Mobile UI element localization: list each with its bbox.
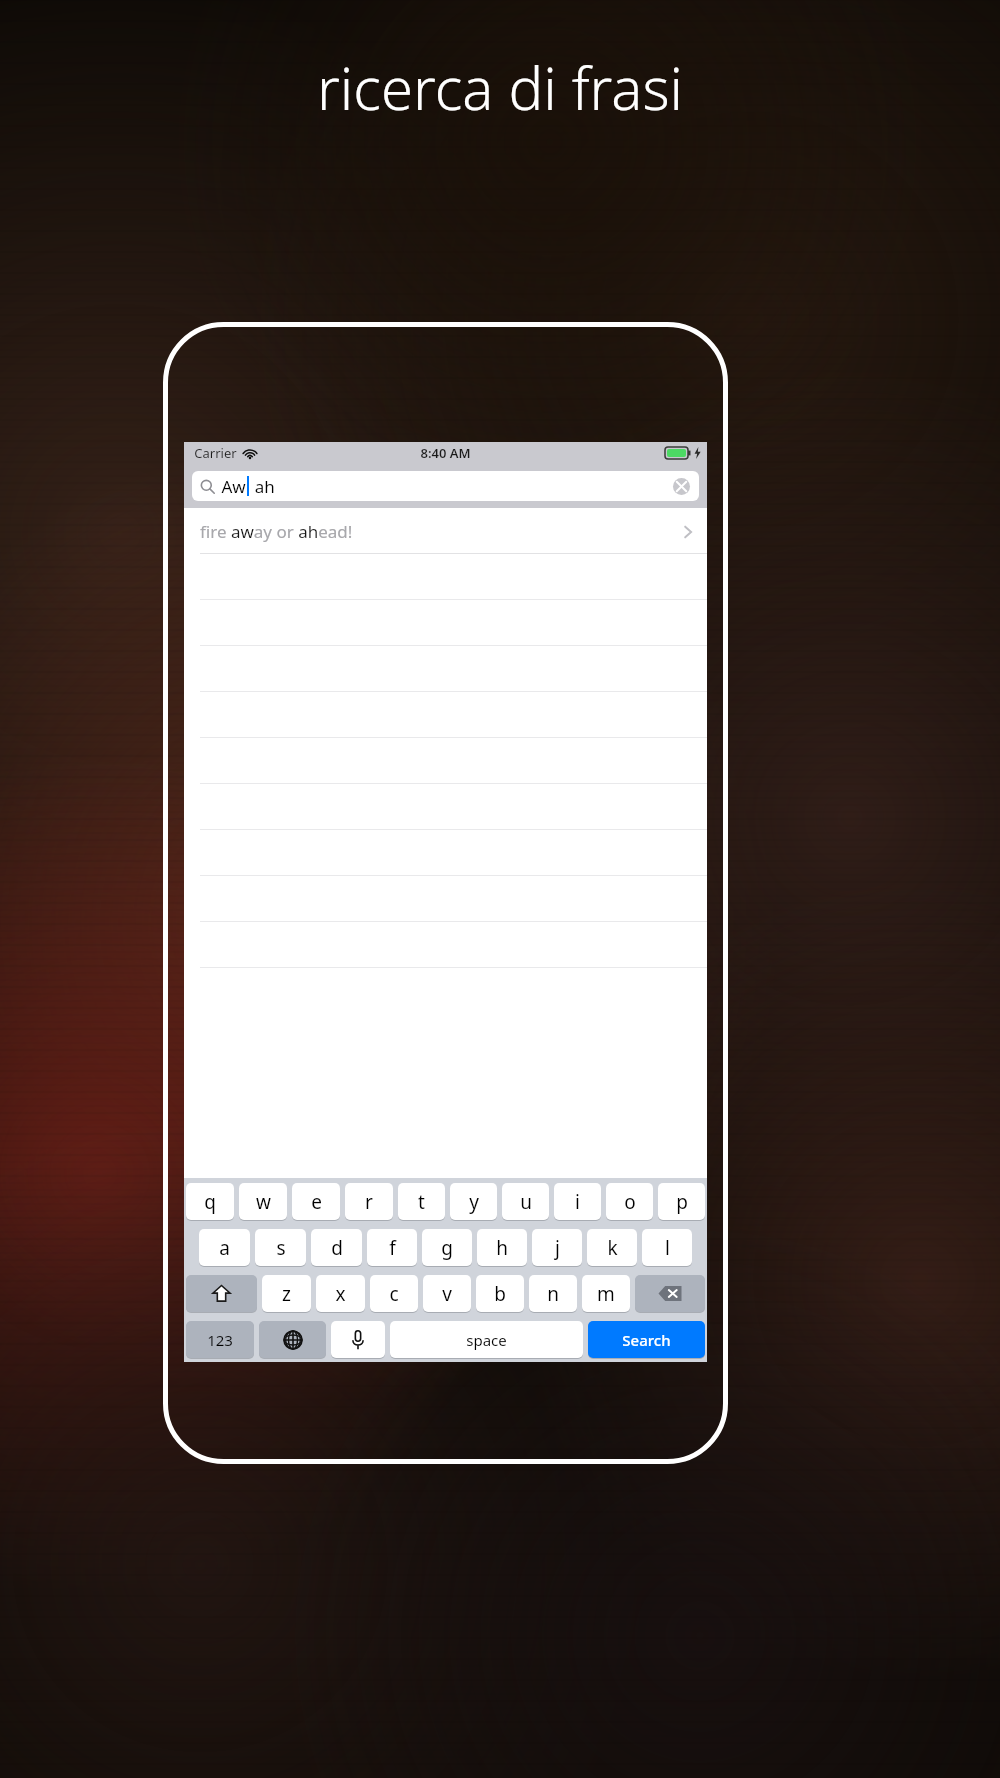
button[interactable]: a <box>199 1229 250 1267</box>
button[interactable]: Backspace <box>635 1275 705 1313</box>
staticText: l <box>665 1235 670 1261</box>
button[interactable]: y <box>450 1183 497 1221</box>
staticText: space <box>466 1330 507 1350</box>
button[interactable]: Change keyboard <box>259 1321 326 1359</box>
staticText: 123 <box>207 1330 233 1350</box>
button[interactable]: l <box>642 1229 692 1267</box>
button[interactable]: w <box>239 1183 287 1221</box>
staticText: v <box>442 1281 452 1307</box>
staticText: c <box>389 1281 399 1307</box>
staticText: p <box>676 1189 688 1215</box>
staticText: ah <box>250 475 275 498</box>
button[interactable]: b <box>476 1275 524 1313</box>
button[interactable]: space <box>390 1321 583 1359</box>
button[interactable]: i <box>554 1183 601 1221</box>
staticText: u <box>520 1189 532 1215</box>
button[interactable]: r <box>345 1183 393 1221</box>
button[interactable]: Clear text <box>671 476 691 496</box>
staticText: k <box>607 1235 618 1261</box>
staticText: Search <box>622 1330 671 1350</box>
staticText: o <box>624 1189 636 1215</box>
button[interactable]: q <box>186 1183 234 1221</box>
button[interactable]: Search <box>588 1321 705 1359</box>
button[interactable]: g <box>422 1229 472 1267</box>
staticText: r <box>365 1189 373 1215</box>
button[interactable]: fire away or ahead! <box>184 508 707 554</box>
staticText: q <box>204 1189 216 1215</box>
button[interactable]: Shift <box>186 1275 257 1313</box>
staticText: h <box>496 1235 508 1261</box>
button[interactable]: k <box>587 1229 637 1267</box>
button[interactable]: j <box>532 1229 582 1267</box>
button[interactable]: v <box>423 1275 471 1313</box>
staticText: t <box>418 1189 425 1215</box>
staticText: z <box>282 1281 291 1307</box>
button[interactable]: x <box>316 1275 365 1313</box>
button[interactable]: h <box>477 1229 527 1267</box>
button[interactable]: 123 <box>186 1321 254 1359</box>
staticText: f <box>389 1235 396 1261</box>
button[interactable]: u <box>502 1183 549 1221</box>
staticText: e <box>311 1189 322 1215</box>
staticText: m <box>597 1281 615 1307</box>
staticText: i <box>575 1189 580 1215</box>
button[interactable]: o <box>606 1183 653 1221</box>
staticText: ricerca di frasi <box>317 48 683 127</box>
button[interactable]: e <box>292 1183 340 1221</box>
staticText: j <box>555 1235 560 1261</box>
staticText: fire away or ahead! <box>200 520 353 543</box>
button[interactable]: Voice input <box>331 1321 385 1359</box>
staticText: s <box>276 1235 286 1261</box>
staticText: b <box>494 1281 506 1307</box>
button[interactable]: Aw <box>192 471 699 501</box>
staticText: g <box>441 1235 453 1261</box>
button[interactable]: n <box>529 1275 577 1313</box>
staticText: a <box>219 1235 230 1261</box>
button[interactable]: s <box>255 1229 306 1267</box>
button[interactable]: c <box>370 1275 418 1313</box>
button[interactable]: m <box>582 1275 630 1313</box>
button[interactable]: p <box>658 1183 705 1221</box>
staticText: Aw <box>221 475 246 498</box>
button[interactable]: d <box>311 1229 362 1267</box>
staticText: Carrier <box>194 444 237 462</box>
staticText: d <box>331 1235 343 1261</box>
staticText: x <box>335 1281 346 1307</box>
staticText: w <box>256 1189 271 1215</box>
button[interactable]: t <box>398 1183 445 1221</box>
staticText: n <box>547 1281 559 1307</box>
staticText: y <box>469 1189 479 1215</box>
staticText: 8:40 AM <box>420 444 471 462</box>
button[interactable]: f <box>367 1229 417 1267</box>
button[interactable]: z <box>262 1275 311 1313</box>
